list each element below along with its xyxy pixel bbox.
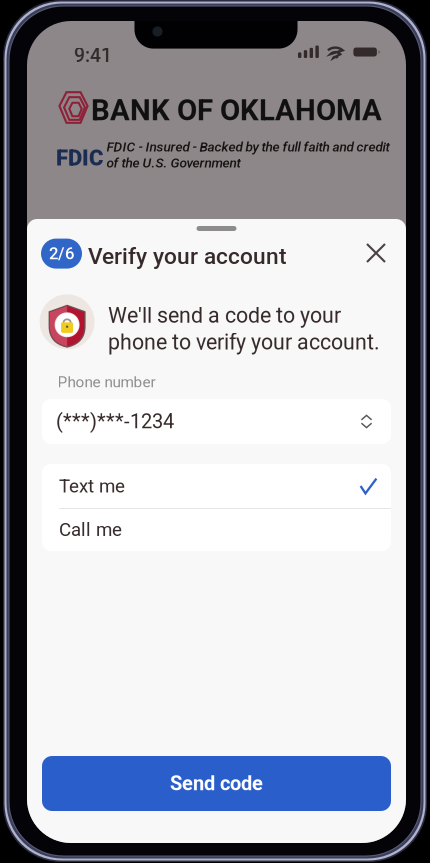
- staticText: Send code: [170, 772, 263, 795]
- staticText: FDIC - Insured - Backed by the full fait…: [106, 139, 389, 171]
- staticText: Text me: [59, 475, 125, 497]
- staticText: (***)***-1234: [56, 410, 174, 433]
- staticText: BANK OF OKLAHOMA: [91, 93, 382, 127]
- button[interactable]: Call me: [42, 508, 391, 551]
- staticText: We'll send a code to your phone to verif…: [108, 303, 380, 355]
- staticText: 9:41: [74, 44, 112, 67]
- button[interactable]: (***)***-1234: [42, 399, 391, 444]
- staticText: Phone number: [57, 373, 155, 391]
- staticText: 2/6: [49, 244, 74, 263]
- staticText: Call me: [59, 519, 122, 540]
- staticText: Verify your account: [88, 243, 287, 270]
- button[interactable]: Send code: [42, 756, 391, 811]
- staticText: FDIC: [56, 145, 103, 171]
- button[interactable]: Close: [354, 231, 398, 275]
- button[interactable]: Text me: [42, 464, 391, 508]
